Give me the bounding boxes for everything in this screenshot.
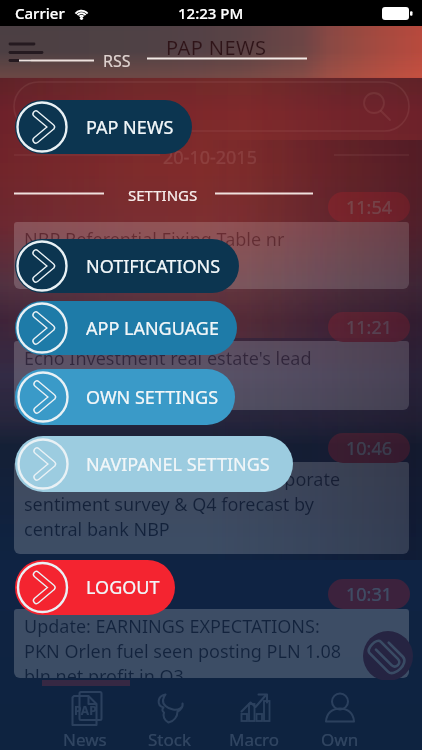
- staticText: Own: [321, 728, 359, 750]
- button[interactable]: Menu: [0, 30, 48, 70]
- staticText: Echo Investment real estate's lead: [24, 346, 312, 371]
- staticText: Stock: [148, 728, 191, 750]
- staticText: LOGOUT: [86, 575, 160, 600]
- staticText: Update: EARNINGS EXPECTATIONS:: [24, 614, 320, 639]
- staticText: 10:31: [346, 582, 393, 607]
- button[interactable]: OWN SETTINGS: [15, 369, 235, 425]
- button[interactable]: Stock: [127, 690, 212, 750]
- button[interactable]: Own: [297, 690, 382, 750]
- button[interactable]: NAVIPANEL SETTINGS: [15, 436, 293, 492]
- button[interactable]: Macro: [212, 690, 297, 750]
- staticText: OWN SETTINGS: [86, 385, 219, 410]
- staticText: Carrier: [15, 3, 65, 23]
- button[interactable]: Echo Investment real estate's lead: [14, 341, 409, 410]
- button[interactable]: Attach: [363, 631, 413, 681]
- staticText: NAVIPANEL SETTINGS: [86, 452, 270, 477]
- staticText: News: [63, 728, 107, 750]
- staticText: SETTINGS: [128, 185, 198, 205]
- staticText: NOTIFICATIONS: [86, 254, 221, 279]
- button[interactable]: NBP: slight deterioration in corporate: [14, 462, 409, 554]
- staticText: exec ups company stake: [24, 371, 230, 396]
- staticText: NBP Referential Fixing Table nr: [24, 227, 285, 252]
- staticText: PKN Orlen fuel seen posting PLN 1.08: [24, 639, 341, 664]
- staticText: 12:23 PM: [178, 3, 244, 23]
- staticText: PAP: [74, 702, 97, 718]
- staticText: bln net profit in Q3: [24, 664, 184, 678]
- staticText: 10:46: [346, 436, 393, 461]
- button[interactable]: LOGOUT: [15, 560, 175, 615]
- staticText: 20-10-2015: [163, 145, 257, 170]
- staticText: 11:21: [346, 315, 393, 340]
- staticText: central bank NBP: [24, 517, 170, 542]
- button[interactable]: NBP Referential Fixing Table nr: [14, 222, 409, 289]
- button[interactable]: APP LANGUAGE: [15, 301, 237, 355]
- button[interactable]: PAP: [42, 690, 127, 750]
- staticText: sentiment survey & Q4 forecast by: [24, 492, 314, 517]
- staticText: APP LANGUAGE: [86, 316, 219, 341]
- staticText: 11:54: [346, 195, 393, 220]
- button[interactable]: PAP NEWS: [15, 100, 192, 154]
- staticText: PAP NEWS: [86, 115, 174, 140]
- staticText: PAP NEWS: [166, 34, 267, 61]
- staticText: NBP: slight deterioration in corporate: [24, 467, 341, 492]
- button[interactable]: NOTIFICATIONS: [15, 239, 239, 293]
- staticText: Macro: [229, 728, 280, 750]
- button[interactable]: Update: EARNINGS EXPECTATIONS:: [14, 609, 409, 678]
- staticText: RSS: [103, 50, 131, 72]
